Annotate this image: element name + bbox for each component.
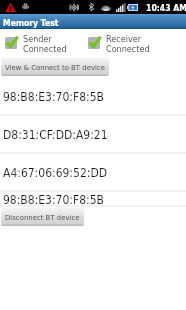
button[interactable]: 98:B8:E3:70:F8:5B: [0, 78, 186, 116]
staticText: 98:B8:E3:70:F8:5B: [3, 193, 104, 207]
staticText: A4:67:06:69:52:DD: [3, 166, 108, 180]
button[interactable]: Disconnect BT device: [1, 208, 84, 226]
staticText: Connected: [23, 44, 67, 54]
staticText: Receiver: [106, 34, 141, 44]
staticText: D8:31:CF:DD:A9:21: [3, 128, 108, 142]
staticText: Connected: [106, 44, 150, 54]
button[interactable]: 98:B8:E3:70:F8:5B: [0, 192, 186, 207]
staticText: 98:B8:E3:70:F8:5B: [3, 90, 104, 104]
button[interactable]: A4:67:06:69:52:DD: [0, 154, 186, 192]
button[interactable]: Receiver: [88, 34, 150, 54]
button[interactable]: D8:31:CF:DD:A9:21: [0, 116, 186, 154]
button[interactable]: View & Connect to BT device: [1, 58, 109, 76]
staticText: Sender: [23, 34, 52, 44]
staticText: Memory Test: [3, 18, 59, 28]
staticText: View & Connect to BT device: [5, 63, 105, 72]
staticText: Disconnect BT device: [5, 213, 80, 222]
staticText: 10:43 AM: [146, 3, 186, 13]
button[interactable]: Sender: [5, 34, 67, 54]
